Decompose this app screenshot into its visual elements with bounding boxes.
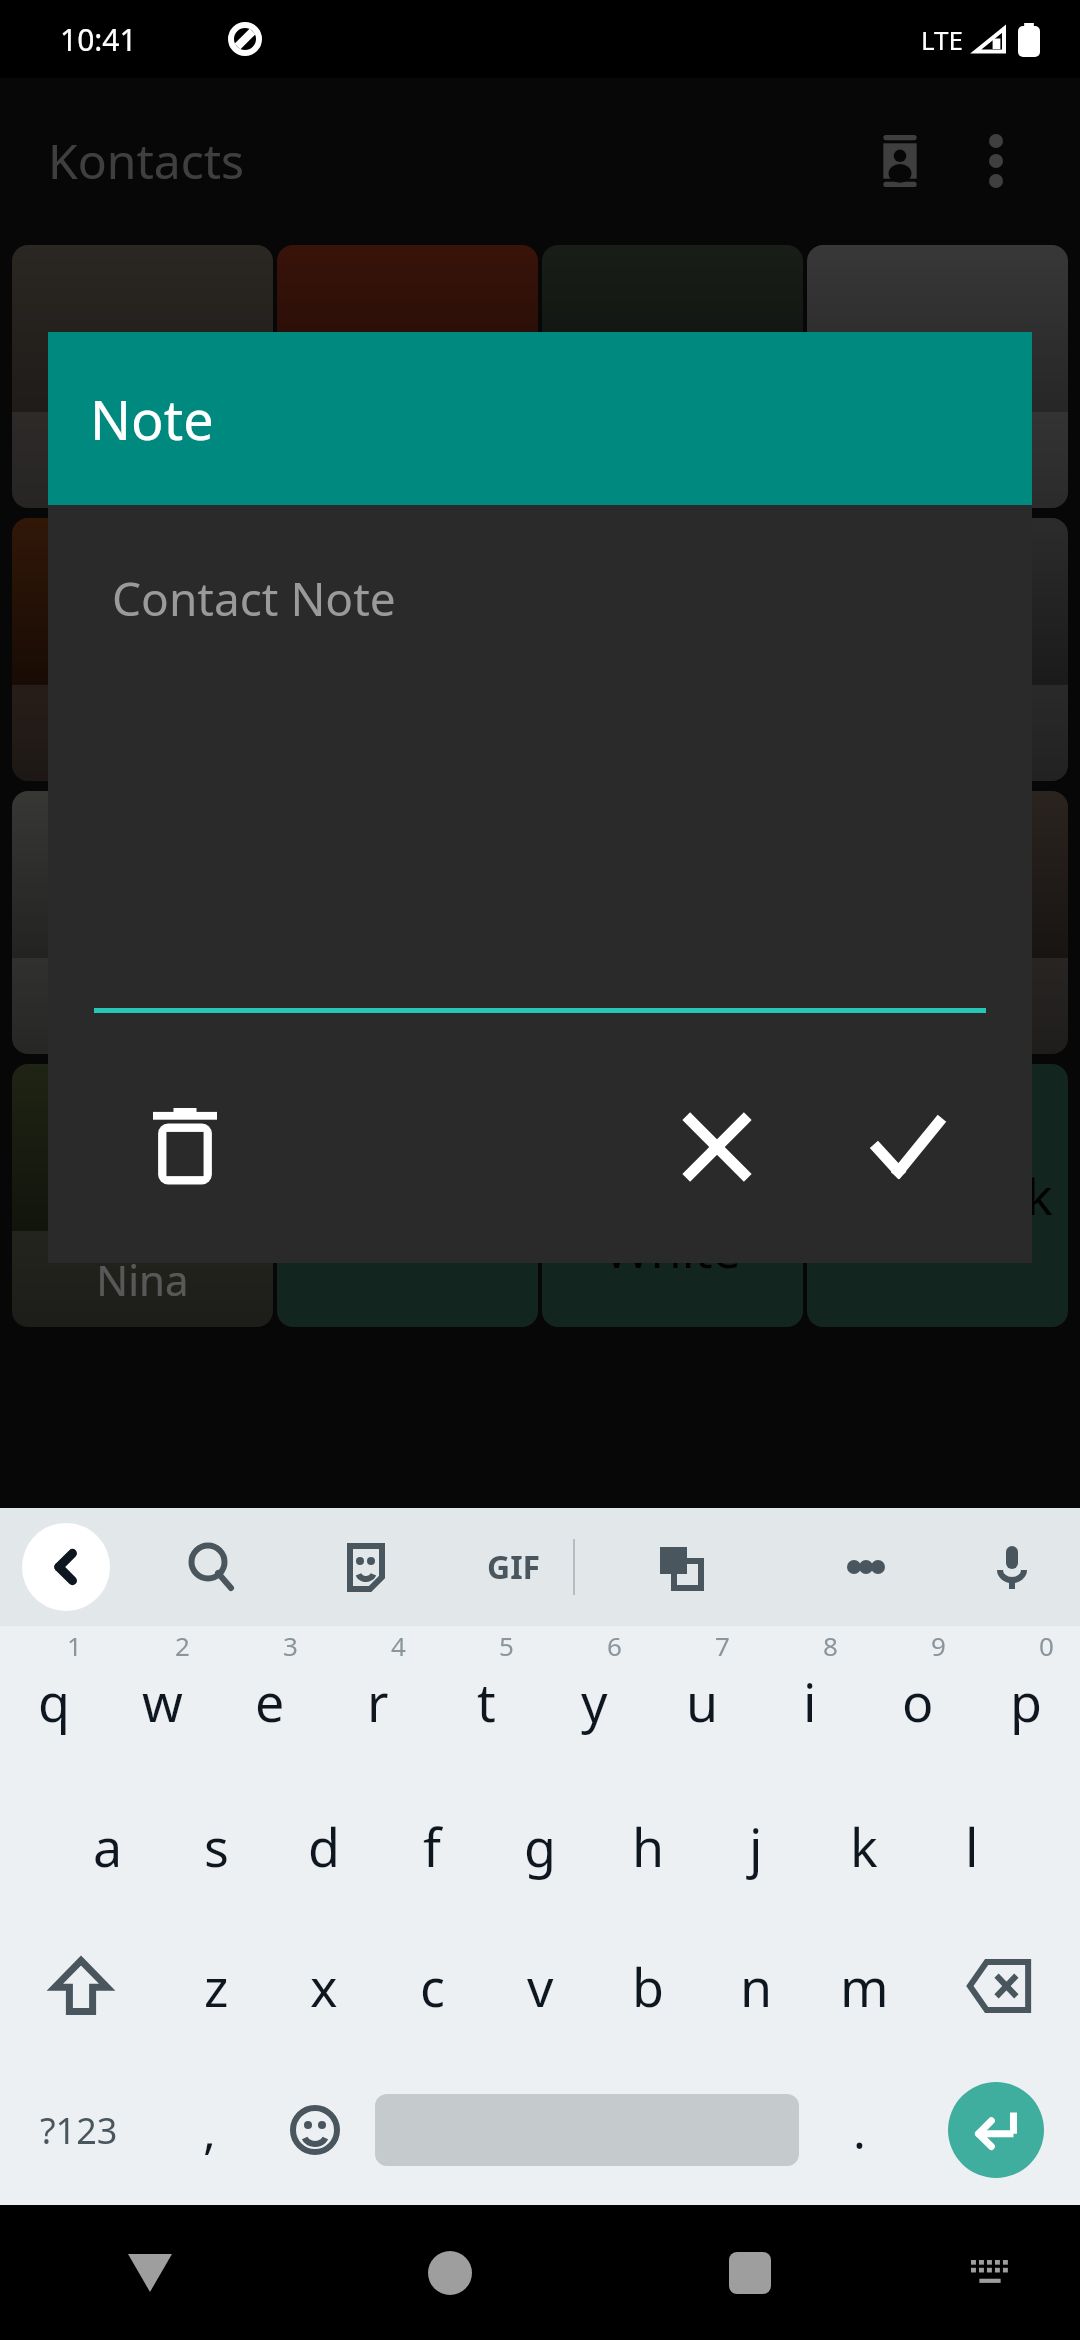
- button[interactable]: Grace: [12, 245, 273, 508]
- button[interactable]: .: [807, 2056, 912, 2204]
- staticText: 3: [283, 1628, 298, 1663]
- button[interactable]: Hannah: [277, 245, 538, 508]
- button[interactable]: w: [108, 1626, 216, 1776]
- button[interactable]: Enter: [948, 2082, 1044, 2178]
- staticText: q: [38, 1666, 70, 1737]
- button[interactable]: i: [756, 1626, 864, 1776]
- button[interactable]: ,: [157, 2056, 262, 2204]
- staticText: Keira: [887, 978, 988, 1035]
- button[interactable]: Contacts: [852, 113, 948, 209]
- staticText: GIF: [487, 1545, 541, 1589]
- button[interactable]: Search: [168, 1523, 256, 1611]
- button[interactable]: More: [822, 1523, 910, 1611]
- button[interactable]: s: [162, 1776, 270, 1916]
- staticText: t: [477, 1666, 496, 1737]
- staticText: g: [524, 1811, 556, 1882]
- button[interactable]: q: [0, 1626, 108, 1776]
- staticText: k: [850, 1811, 878, 1882]
- button[interactable]: Isabel: [807, 245, 1068, 508]
- staticText: a: [93, 1811, 123, 1882]
- button[interactable]: William White: [542, 1064, 803, 1327]
- button[interactable]: Voice input: [968, 1523, 1056, 1611]
- button[interactable]: x: [270, 1916, 378, 2056]
- button[interactable]: Nina: [12, 1064, 273, 1327]
- staticText: j: [749, 1811, 763, 1882]
- button[interactable]: y: [540, 1626, 648, 1776]
- button[interactable]: Save: [852, 1092, 962, 1202]
- button[interactable]: e: [216, 1626, 324, 1776]
- button[interactable]: f: [378, 1776, 486, 1916]
- button[interactable]: Backspace: [918, 1916, 1080, 2056]
- button[interactable]: t: [432, 1626, 540, 1776]
- staticText: v: [527, 1951, 554, 2022]
- staticText: h: [632, 1811, 665, 1882]
- button[interactable]: Recents: [600, 2205, 900, 2340]
- button[interactable]: Switch keyboard: [900, 2205, 1080, 2340]
- button[interactable]: z: [162, 1916, 270, 2056]
- button[interactable]: Katherine: [542, 791, 803, 1054]
- button[interactable]: James: [277, 518, 538, 781]
- button[interactable]: p: [972, 1626, 1080, 1776]
- button[interactable]: Bob Black: [807, 1064, 1068, 1327]
- button[interactable]: Jack: [12, 518, 273, 781]
- staticText: f: [423, 1811, 441, 1882]
- button[interactable]: Henry: [542, 245, 803, 508]
- button[interactable]: GIF: [470, 1523, 558, 1611]
- button[interactable]: u: [648, 1626, 756, 1776]
- button[interactable]: r: [324, 1626, 432, 1776]
- button[interactable]: b: [594, 1916, 702, 2056]
- staticText: z: [204, 1951, 229, 2022]
- staticText: ,: [203, 2098, 216, 2163]
- staticText: LTE: [921, 22, 964, 57]
- button[interactable]: Keira: [807, 791, 1068, 1054]
- button[interactable]: n: [702, 1916, 810, 2056]
- staticText: n: [740, 1951, 773, 2022]
- staticText: c: [420, 1951, 445, 2022]
- button[interactable]: ?123: [0, 2056, 157, 2204]
- button[interactable]: Home: [300, 2205, 600, 2340]
- staticText: William White: [550, 1110, 795, 1282]
- staticText: Note: [90, 382, 214, 456]
- staticText: Katherine: [576, 978, 769, 1035]
- button[interactable]: Patty Pink: [277, 1064, 538, 1327]
- button[interactable]: Shift: [0, 1916, 162, 2056]
- button[interactable]: h: [594, 1776, 702, 1916]
- staticText: r: [367, 1666, 389, 1737]
- button[interactable]: More options: [948, 113, 1044, 209]
- staticText: Grace: [85, 432, 200, 489]
- staticText: ?123: [40, 2106, 118, 2155]
- button[interactable]: Harley: [12, 791, 273, 1054]
- button[interactable]: j: [702, 1776, 810, 1916]
- button[interactable]: o: [864, 1626, 972, 1776]
- staticText: 5: [499, 1628, 514, 1663]
- staticText: 10:41: [60, 19, 137, 60]
- staticText: Contact Note: [112, 567, 396, 630]
- staticText: .: [853, 2098, 866, 2163]
- button[interactable]: Cancel: [662, 1092, 772, 1202]
- button[interactable]: Jeremiah: [277, 791, 538, 1054]
- button[interactable]: Delete note: [130, 1092, 240, 1202]
- button[interactable]: Back: [22, 1523, 110, 1611]
- button[interactable]: a: [54, 1776, 162, 1916]
- button[interactable]: v: [486, 1916, 594, 2056]
- button[interactable]: d: [270, 1776, 378, 1916]
- button[interactable]: c: [378, 1916, 486, 2056]
- button[interactable]: k: [810, 1776, 918, 1916]
- button[interactable]: l: [918, 1776, 1026, 1916]
- button[interactable]: Emoji: [262, 2056, 367, 2204]
- button[interactable]: m: [810, 1916, 918, 2056]
- button[interactable]: g: [486, 1776, 594, 1916]
- staticText: s: [204, 1811, 229, 1882]
- staticText: 2: [175, 1628, 190, 1663]
- button[interactable]: Stickers: [322, 1523, 410, 1611]
- button[interactable]: Hide keyboard: [0, 2205, 300, 2340]
- button[interactable]: Translate: [636, 1523, 724, 1611]
- staticText: 6: [607, 1628, 622, 1663]
